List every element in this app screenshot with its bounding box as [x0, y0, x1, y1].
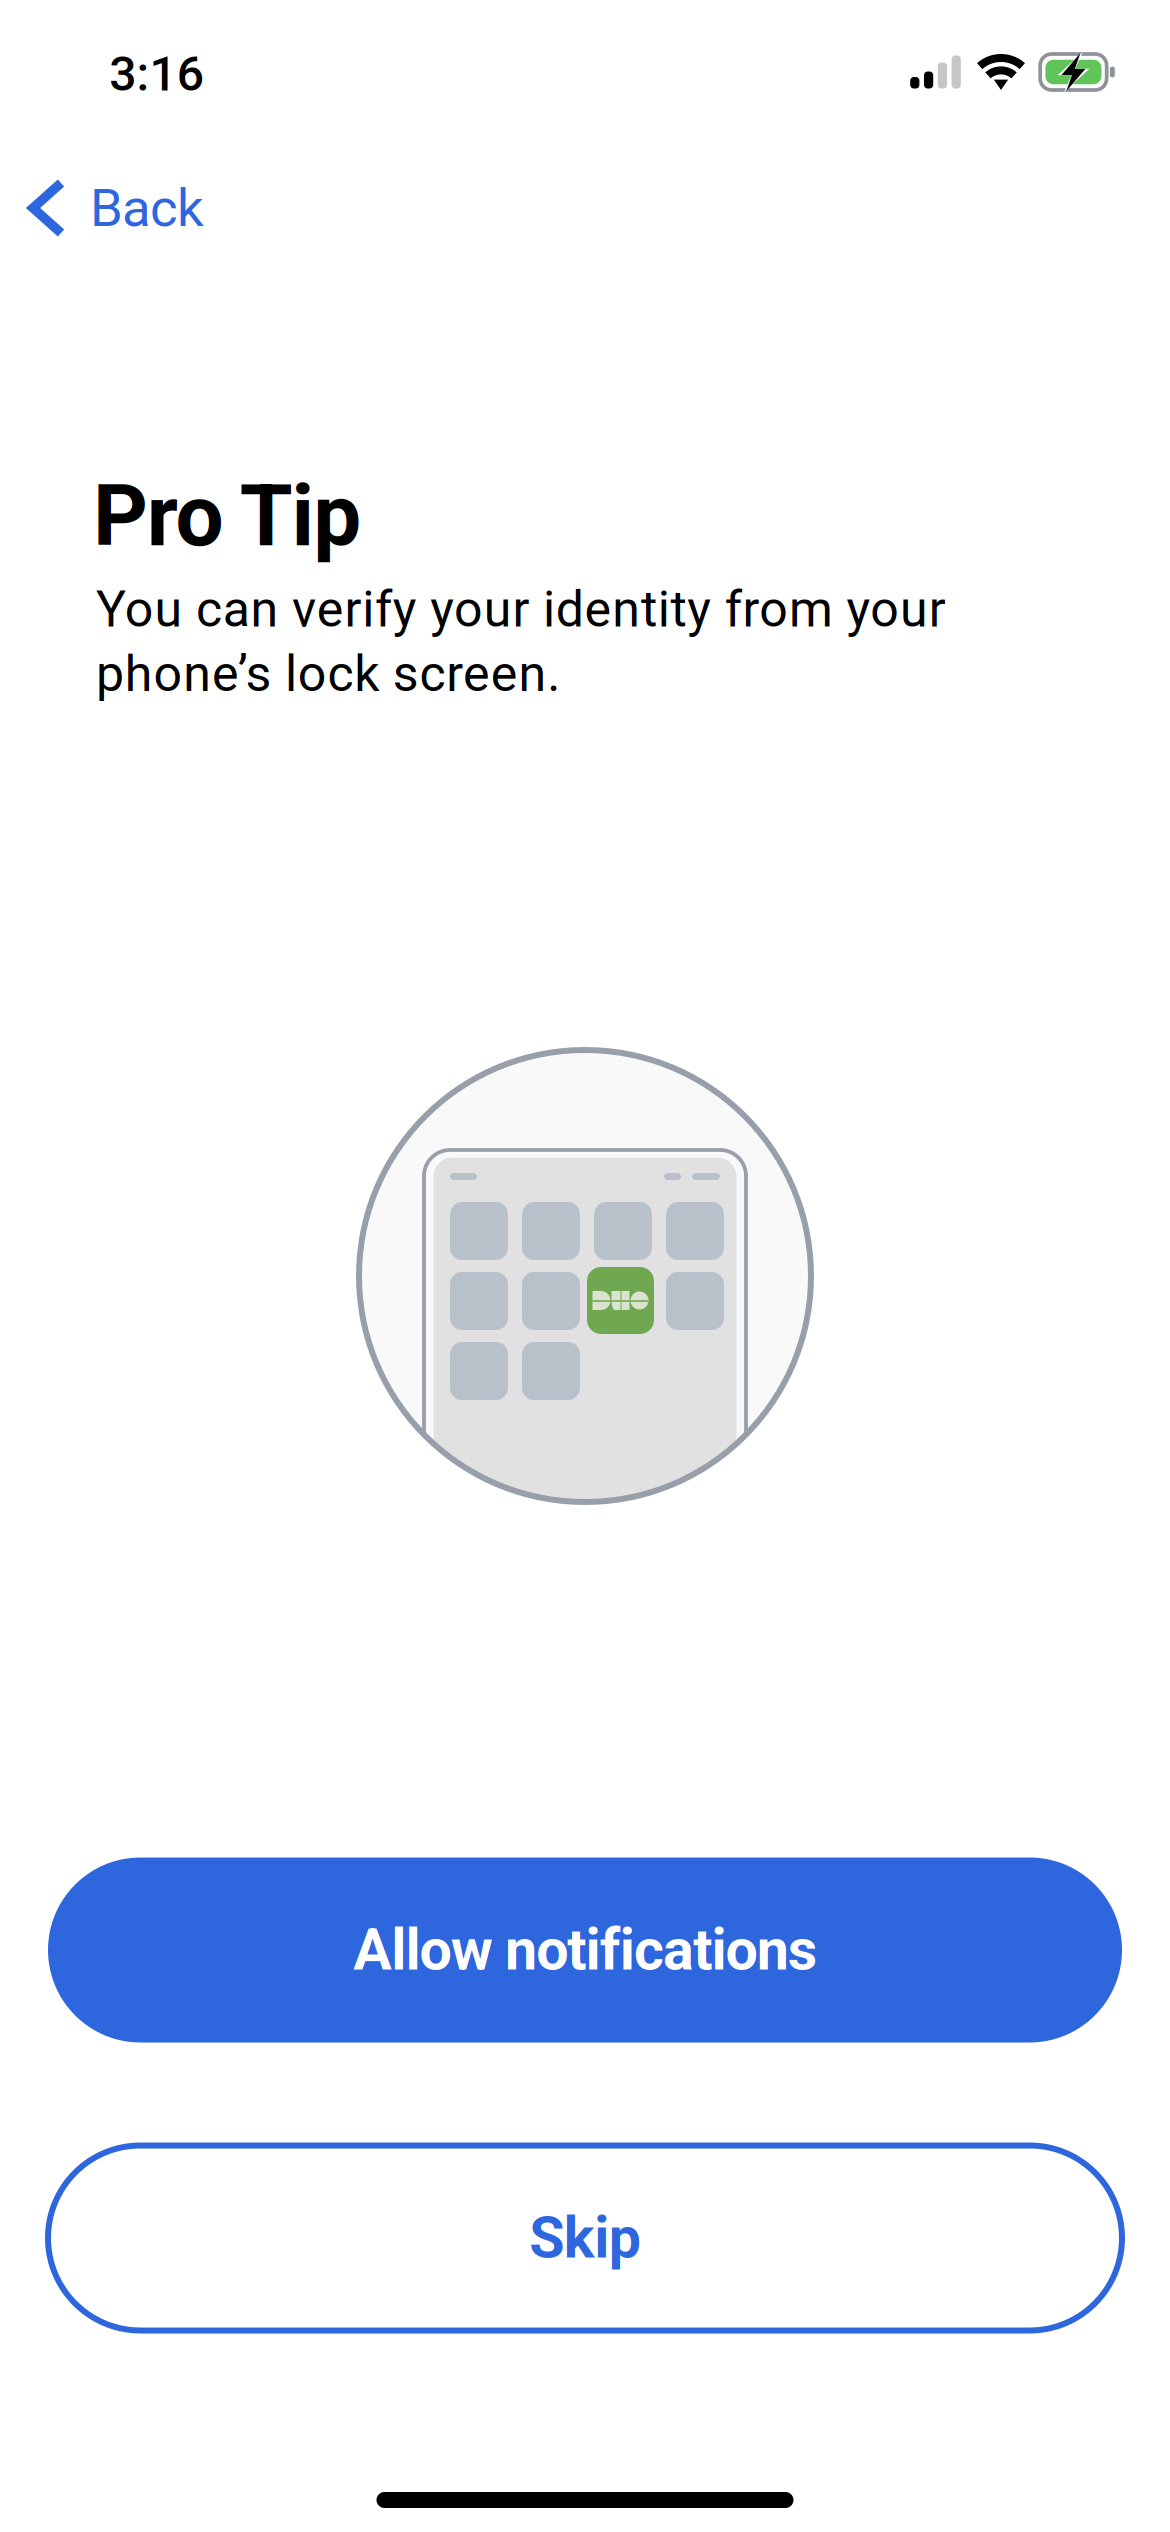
staticText: Pro Tip [93, 466, 361, 566]
button[interactable]: Allow notifications [48, 1857, 1122, 2042]
staticText: Back [90, 177, 204, 239]
staticText: Allow notifications [353, 1916, 817, 1984]
button[interactable]: Skip [48, 2145, 1122, 2330]
button[interactable]: Back [0, 142, 272, 274]
staticText: Skip [529, 2204, 641, 2272]
staticText: You can verify your identity from your p… [96, 580, 946, 703]
staticText: 3:16 [109, 46, 204, 102]
